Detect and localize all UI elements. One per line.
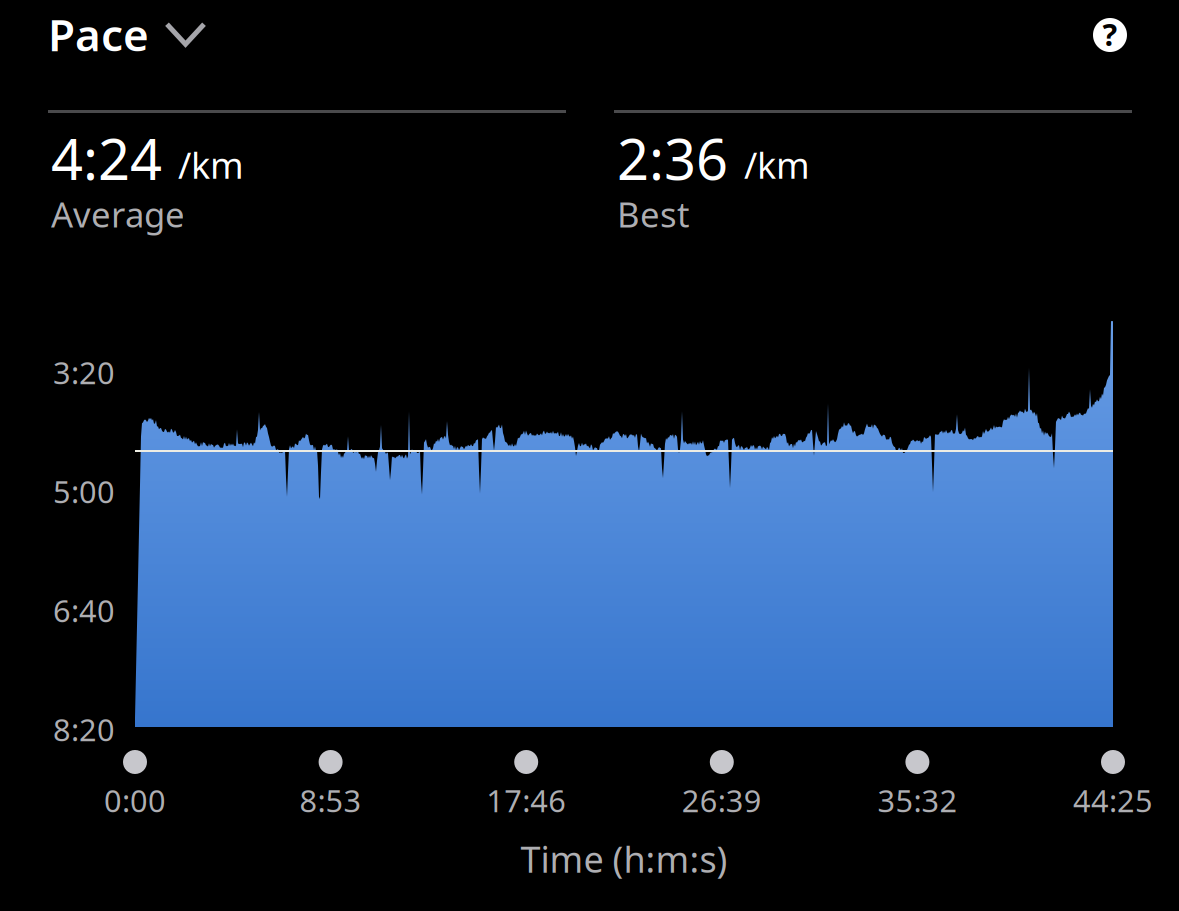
button[interactable]: Pace <box>48 5 204 63</box>
staticText: Time (h:m:s) <box>520 835 727 883</box>
staticText: Best <box>617 191 690 237</box>
button[interactable]: Help <box>1093 18 1127 52</box>
staticText: Pace <box>48 5 149 63</box>
staticText: 8:20 <box>53 709 115 750</box>
staticText: 8:53 <box>300 780 362 821</box>
staticText: 35:32 <box>877 780 957 821</box>
staticText: 26:39 <box>682 780 762 821</box>
staticText: 3:20 <box>53 352 115 393</box>
staticText: 4:24 <box>51 121 162 195</box>
staticText: ? <box>1102 14 1117 54</box>
staticText: /km <box>178 141 244 189</box>
staticText: 44:25 <box>1073 780 1153 821</box>
staticText: /km <box>744 141 810 189</box>
staticText: 5:00 <box>53 471 115 512</box>
staticText: 17:46 <box>486 780 566 821</box>
staticText: 2:36 <box>617 121 728 195</box>
staticText: 0:00 <box>104 780 166 821</box>
staticText: Average <box>51 191 185 237</box>
staticText: 6:40 <box>53 590 115 631</box>
